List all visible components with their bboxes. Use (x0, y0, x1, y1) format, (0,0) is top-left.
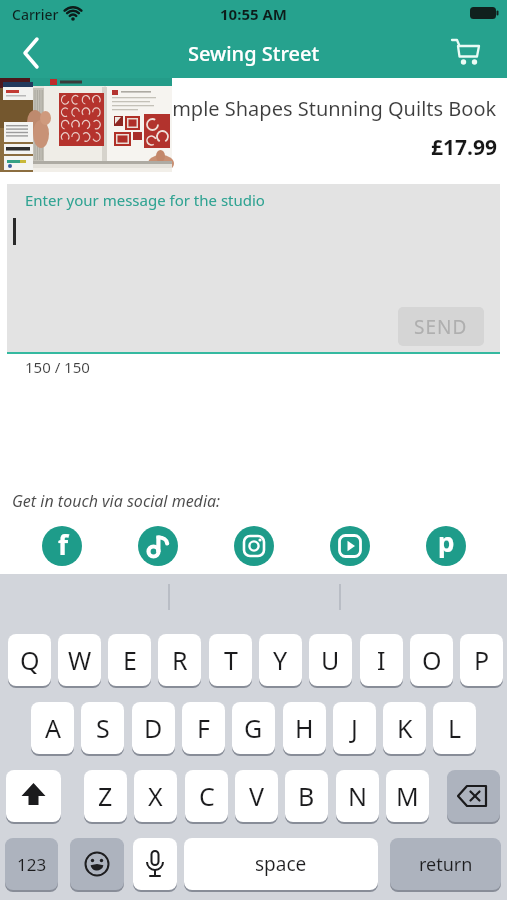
staticText: Get in touch via social media: (12, 490, 221, 512)
button[interactable]: return (390, 838, 501, 890)
button[interactable]: U (309, 634, 352, 686)
button[interactable]: Q (8, 634, 51, 686)
staticText: Z (98, 779, 113, 813)
button[interactable]: SEND (398, 307, 484, 346)
button[interactable] (6, 770, 61, 822)
button[interactable]: K (383, 702, 426, 754)
button[interactable]: L (433, 702, 476, 754)
button[interactable]: Simple Shapes Stunning Quilts Book (0, 78, 507, 180)
button[interactable]: O (410, 634, 453, 686)
staticText: P (474, 643, 490, 677)
staticText: 10:55 AM (220, 4, 287, 24)
button[interactable] (330, 526, 370, 566)
button[interactable]: C (185, 770, 228, 822)
button[interactable]: B (285, 770, 328, 822)
staticText: Enter your message for the studio (25, 190, 265, 210)
staticText: I (377, 643, 386, 677)
button[interactable]: N (336, 770, 379, 822)
button[interactable]: V (235, 770, 278, 822)
staticText: S (96, 711, 110, 745)
staticText: 150 / 150 (25, 357, 90, 377)
button[interactable]: Y (259, 634, 302, 686)
staticText: return (419, 852, 473, 877)
button[interactable]: p (426, 526, 466, 566)
button[interactable]: A (31, 702, 74, 754)
staticText: J (351, 711, 358, 745)
button[interactable]: 123 (5, 838, 58, 890)
button[interactable]: S (81, 702, 124, 754)
button[interactable]: W (58, 634, 101, 686)
staticText: p (438, 526, 455, 559)
button[interactable]: T (209, 634, 252, 686)
button[interactable]: H (283, 702, 326, 754)
button[interactable]: P (460, 634, 503, 686)
staticText: G (244, 711, 263, 745)
button[interactable] (8, 30, 54, 76)
staticText: X (148, 779, 163, 813)
staticText: Q (20, 643, 40, 677)
staticText: V (249, 779, 265, 813)
staticText: N (348, 779, 368, 813)
staticText: Carrier (12, 5, 59, 24)
staticText: W (68, 643, 92, 677)
button[interactable] (138, 526, 178, 566)
button[interactable]: Enter your message for the studio (7, 184, 500, 352)
button[interactable]: E (108, 634, 151, 686)
staticText: D (144, 711, 163, 745)
button[interactable]: D (132, 702, 175, 754)
staticText: Y (273, 643, 288, 677)
staticText: SEND (414, 314, 468, 340)
staticText: E (123, 643, 137, 677)
button[interactable]: I (360, 634, 403, 686)
staticText: space (255, 851, 307, 877)
staticText: U (321, 643, 340, 677)
button[interactable]: M (386, 770, 429, 822)
staticText: C (199, 779, 215, 813)
button[interactable]: space (184, 838, 378, 890)
staticText: F (197, 711, 210, 745)
staticText: Sewing Street (188, 40, 320, 67)
button[interactable] (234, 526, 274, 566)
staticText: L (448, 711, 462, 745)
button[interactable] (133, 838, 177, 890)
button[interactable]: F (182, 702, 225, 754)
button[interactable]: Z (84, 770, 127, 822)
button[interactable]: X (134, 770, 177, 822)
staticText: Simple Shapes Stunning Quilts Book (156, 95, 497, 122)
staticText: £17.99 (431, 133, 497, 162)
staticText: A (45, 711, 61, 745)
button[interactable] (444, 34, 486, 72)
staticText: R (172, 643, 188, 677)
staticText: M (396, 779, 419, 813)
staticText: K (397, 711, 413, 745)
button[interactable]: f (42, 526, 82, 566)
staticText: B (298, 779, 315, 813)
button[interactable]: R (158, 634, 201, 686)
staticText: f (58, 527, 69, 562)
staticText: T (224, 643, 238, 677)
staticText: O (422, 643, 442, 677)
button[interactable] (70, 838, 124, 890)
button[interactable] (447, 770, 500, 822)
button[interactable]: G (232, 702, 275, 754)
staticText: H (295, 711, 314, 745)
staticText: 123 (17, 853, 47, 876)
button[interactable]: J (333, 702, 376, 754)
